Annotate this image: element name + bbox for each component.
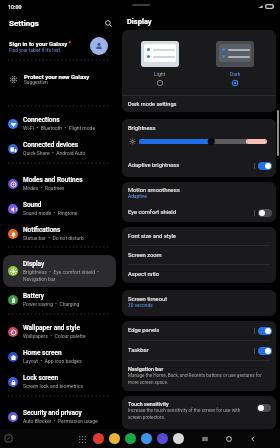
staticText: Adaptive brightness bbox=[128, 162, 254, 169]
staticText: Wallpaper and style bbox=[23, 324, 80, 332]
button[interactable]: Font size and style bbox=[122, 227, 276, 245]
staticText: Home screen bbox=[23, 349, 62, 357]
staticText: Navigation bar bbox=[128, 366, 164, 372]
button[interactable]: Messages bbox=[141, 433, 152, 444]
button[interactable]: Protect your new Galaxy bbox=[0, 61, 119, 97]
staticText: Battery bbox=[23, 292, 44, 300]
staticText: Quick Share • Android Auto bbox=[23, 150, 86, 156]
button[interactable]: Sign in to your Galaxy bbox=[0, 33, 119, 59]
staticText: Sign in to your Galaxy bbox=[9, 40, 68, 47]
staticText: Modes and Routines bbox=[23, 176, 83, 184]
staticText: Screen zoom bbox=[128, 252, 162, 259]
button[interactable]: Display bbox=[3, 255, 116, 287]
button[interactable]: Screen zoom bbox=[122, 246, 276, 264]
staticText: Layout • App icon badges bbox=[23, 358, 82, 364]
button[interactable]: Dark bbox=[212, 41, 258, 86]
staticText: Brightness bbox=[128, 125, 156, 132]
button[interactable]: S Pen bbox=[3, 433, 14, 444]
staticText: Font size and style bbox=[128, 233, 176, 240]
button[interactable]: Screen timeout bbox=[122, 290, 276, 316]
button[interactable]: Adaptive brightness bbox=[122, 154, 276, 177]
button[interactable]: Connections bbox=[0, 111, 119, 136]
button[interactable]: Recents bbox=[199, 433, 211, 445]
button[interactable]: Light bbox=[137, 41, 183, 86]
staticText: Display bbox=[127, 17, 152, 26]
button[interactable]: Dark mode settings bbox=[122, 96, 276, 112]
staticText: 10:00 bbox=[8, 4, 22, 10]
button[interactable]: Taskbar bbox=[122, 341, 276, 360]
staticText: Motion smoothness bbox=[128, 187, 180, 194]
staticText: Aspect ratio bbox=[128, 271, 160, 278]
staticText: Taskbar bbox=[128, 347, 254, 354]
staticText: Connected devices bbox=[23, 141, 79, 149]
button[interactable]: Search bbox=[102, 17, 114, 29]
button[interactable]: Phone bbox=[125, 433, 136, 444]
button[interactable]: Camera bbox=[173, 433, 184, 444]
staticText: Modes • Routines bbox=[23, 185, 65, 191]
button[interactable]: Edge panels bbox=[122, 321, 276, 340]
staticText: Manage the Home, Back, and Recents butto… bbox=[128, 373, 269, 385]
staticText: Security and privacy bbox=[23, 409, 82, 417]
button[interactable]: Navigation bar bbox=[122, 361, 276, 391]
staticText: Sound bbox=[23, 201, 42, 209]
button[interactable]: Connected devices bbox=[0, 136, 119, 161]
staticText: Brightness • Eye comfort shield • Naviga… bbox=[23, 269, 99, 282]
button[interactable]: Back bbox=[247, 433, 259, 445]
button[interactable]: Motion smoothness bbox=[122, 182, 276, 203]
staticText: Lock screen bbox=[23, 374, 59, 382]
button[interactable]: My Files bbox=[109, 433, 120, 444]
staticText: Screen lock and biometrics bbox=[23, 383, 84, 389]
button[interactable]: Battery bbox=[0, 287, 119, 312]
staticText: Protect your new Galaxy bbox=[24, 73, 90, 80]
staticText: Wallpapers • Colour palette bbox=[23, 333, 86, 339]
staticText: Suggestion bbox=[24, 80, 49, 86]
staticText: Connections bbox=[23, 116, 60, 124]
staticText: Power saving • Charging bbox=[23, 301, 80, 307]
button[interactable]: Aspect ratio bbox=[122, 265, 276, 283]
button[interactable]: Lock screen bbox=[0, 369, 119, 394]
staticText: Status bar • Do not disturb bbox=[23, 235, 84, 241]
staticText: Screen timeout bbox=[128, 296, 168, 303]
staticText: Notifications bbox=[23, 226, 61, 234]
button[interactable]: All apps bbox=[76, 433, 88, 445]
button[interactable]: Sound bbox=[0, 196, 119, 221]
button[interactable]: Internet bbox=[157, 433, 168, 444]
staticText: Light bbox=[154, 71, 166, 77]
staticText: Edge panels bbox=[128, 327, 254, 334]
button[interactable]: Modes and Routines bbox=[0, 171, 119, 196]
staticText: Adaptive bbox=[128, 194, 147, 200]
staticText: Auto Blocker • Permission usage bbox=[23, 418, 98, 424]
button[interactable]: Home bbox=[223, 433, 235, 445]
staticText: Settings bbox=[9, 19, 39, 28]
button[interactable]: Touch sensitivity bbox=[122, 396, 276, 429]
button[interactable]: Security and privacy bbox=[0, 404, 119, 429]
staticText: Display bbox=[23, 260, 45, 268]
button[interactable]: Gallery bbox=[93, 433, 104, 444]
staticText: Dark mode settings bbox=[128, 101, 177, 108]
staticText: 30 seconds bbox=[128, 303, 153, 309]
button[interactable]: Notifications bbox=[0, 221, 119, 246]
staticText: Touch sensitivity bbox=[128, 401, 169, 407]
button[interactable]: Eye comfort shield bbox=[122, 203, 276, 222]
staticText: Increase the touch sensitivity of the sc… bbox=[128, 408, 252, 420]
staticText: Find your tablet if it's lost. bbox=[9, 48, 62, 53]
button[interactable]: Home screen bbox=[0, 344, 119, 369]
staticText: Eye comfort shield bbox=[128, 209, 254, 216]
staticText: Sound mode • Ringtone bbox=[23, 210, 78, 216]
staticText: Dark bbox=[230, 71, 241, 77]
button[interactable]: Wallpaper and style bbox=[0, 319, 119, 344]
staticText: Wi-Fi • Bluetooth • Flight mode bbox=[23, 125, 96, 131]
